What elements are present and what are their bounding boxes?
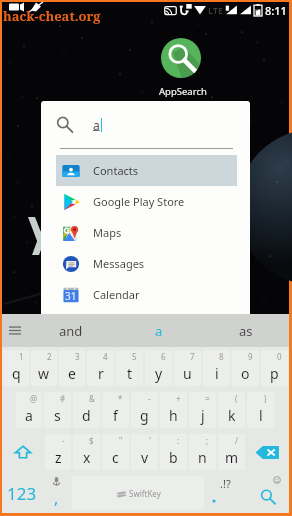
staticText: k [228,406,236,425]
button[interactable]: Shift [2,431,44,473]
button[interactable]: 1 [3,350,29,386]
button[interactable]: + [160,392,187,428]
staticText: 8:11 [265,3,287,18]
staticText: SwiftKey [129,488,161,499]
button[interactable]: 4 [87,350,114,386]
staticText: j [201,406,205,425]
staticText: AppSearch [159,85,207,98]
button[interactable]: 0 [261,350,288,386]
staticText: @ [30,393,38,404]
button[interactable]: 3 [59,350,85,386]
staticText: l [259,406,263,425]
staticText: Contacts [93,163,139,178]
staticText: 2 [47,351,52,362]
staticText: u [183,364,192,383]
staticText: + [176,393,181,404]
staticText: " [119,435,123,446]
button[interactable]: Space [72,476,204,510]
staticText: n [198,448,207,467]
staticText: 4 [103,351,108,362]
button[interactable]: " [102,434,129,470]
staticText: 3 [75,351,80,362]
button[interactable]: Menu [2,314,27,347]
staticText: - [148,393,151,404]
staticText: p [270,364,279,383]
staticText: as [239,322,253,340]
staticText: h [169,406,178,425]
button[interactable]: 9 [232,350,259,386]
staticText: 8 [219,351,224,362]
staticText: = [205,393,210,404]
button[interactable]: and [27,314,115,347]
button[interactable]: - [131,392,158,428]
button[interactable]: 123 [2,473,42,513]
staticText: 7 [190,351,195,362]
staticText: d [82,406,91,425]
button[interactable]: Messages [56,248,237,279]
staticText: f [113,406,118,425]
staticText: ) [264,393,267,404]
button[interactable]: AppSearch [161,38,201,78]
button[interactable]: 31 [56,279,237,310]
button[interactable]: Google Play Store [56,186,237,217]
staticText: g [140,406,149,425]
staticText: / [235,435,238,446]
button[interactable]: @ [16,392,42,428]
button[interactable]: ; [189,434,216,470]
staticText: i [215,364,219,383]
button[interactable]: Search [246,473,289,513]
staticText: a [155,322,163,340]
staticText: r [98,364,104,383]
button[interactable]: = [189,392,216,428]
staticText: e [68,364,76,383]
button[interactable]: 2 [31,350,57,386]
staticText: , [54,487,59,509]
staticText: 31 [65,289,77,303]
button[interactable]: 7 [174,350,201,386]
button[interactable]: # [44,392,71,428]
button[interactable]: ) [247,392,274,428]
button[interactable]: / [218,434,245,470]
staticText: 6 [161,351,166,362]
button[interactable]: 6 [145,350,172,386]
button[interactable]: 8 [203,350,230,386]
staticText: 9 [248,351,253,362]
staticText: hack-cheat.org [3,7,101,25]
button[interactable]: Comma and voice input [42,473,71,513]
staticText: Google Play Store [93,194,185,209]
staticText: * [118,393,123,404]
button[interactable]: * [102,392,129,428]
staticText: x [83,448,91,467]
button[interactable]: & [73,392,100,428]
button[interactable]: Punctuation [205,473,246,513]
staticText: ( [235,393,238,404]
staticText: : [177,435,180,446]
staticText: c [112,448,119,467]
staticText: b [169,448,178,467]
button[interactable]: a [115,314,202,347]
staticText: a [25,406,33,425]
button[interactable]: : [160,434,187,470]
button[interactable]: $ [73,434,100,470]
button[interactable]: Backspace [246,431,289,473]
staticText: 0 [277,351,282,362]
staticText: Maps [93,225,122,240]
staticText: $ [89,435,94,446]
staticText: o [241,364,250,383]
staticText: z [55,448,62,467]
button[interactable]: ( [218,392,245,428]
staticText: s [54,406,61,425]
button[interactable]: as [202,314,289,347]
staticText: 123 [7,482,37,505]
button[interactable]: Maps [56,217,237,248]
staticText: and [59,322,83,340]
staticText: 1 [19,351,24,362]
button[interactable]: 5 [116,350,143,386]
staticText: 5 [132,351,137,362]
staticText: .!? [220,476,231,491]
button[interactable]: Contacts [56,155,237,186]
staticText: v [141,448,149,467]
button[interactable]: ' [131,434,158,470]
staticText: Calendar [93,287,140,302]
button[interactable]: - [45,434,71,470]
